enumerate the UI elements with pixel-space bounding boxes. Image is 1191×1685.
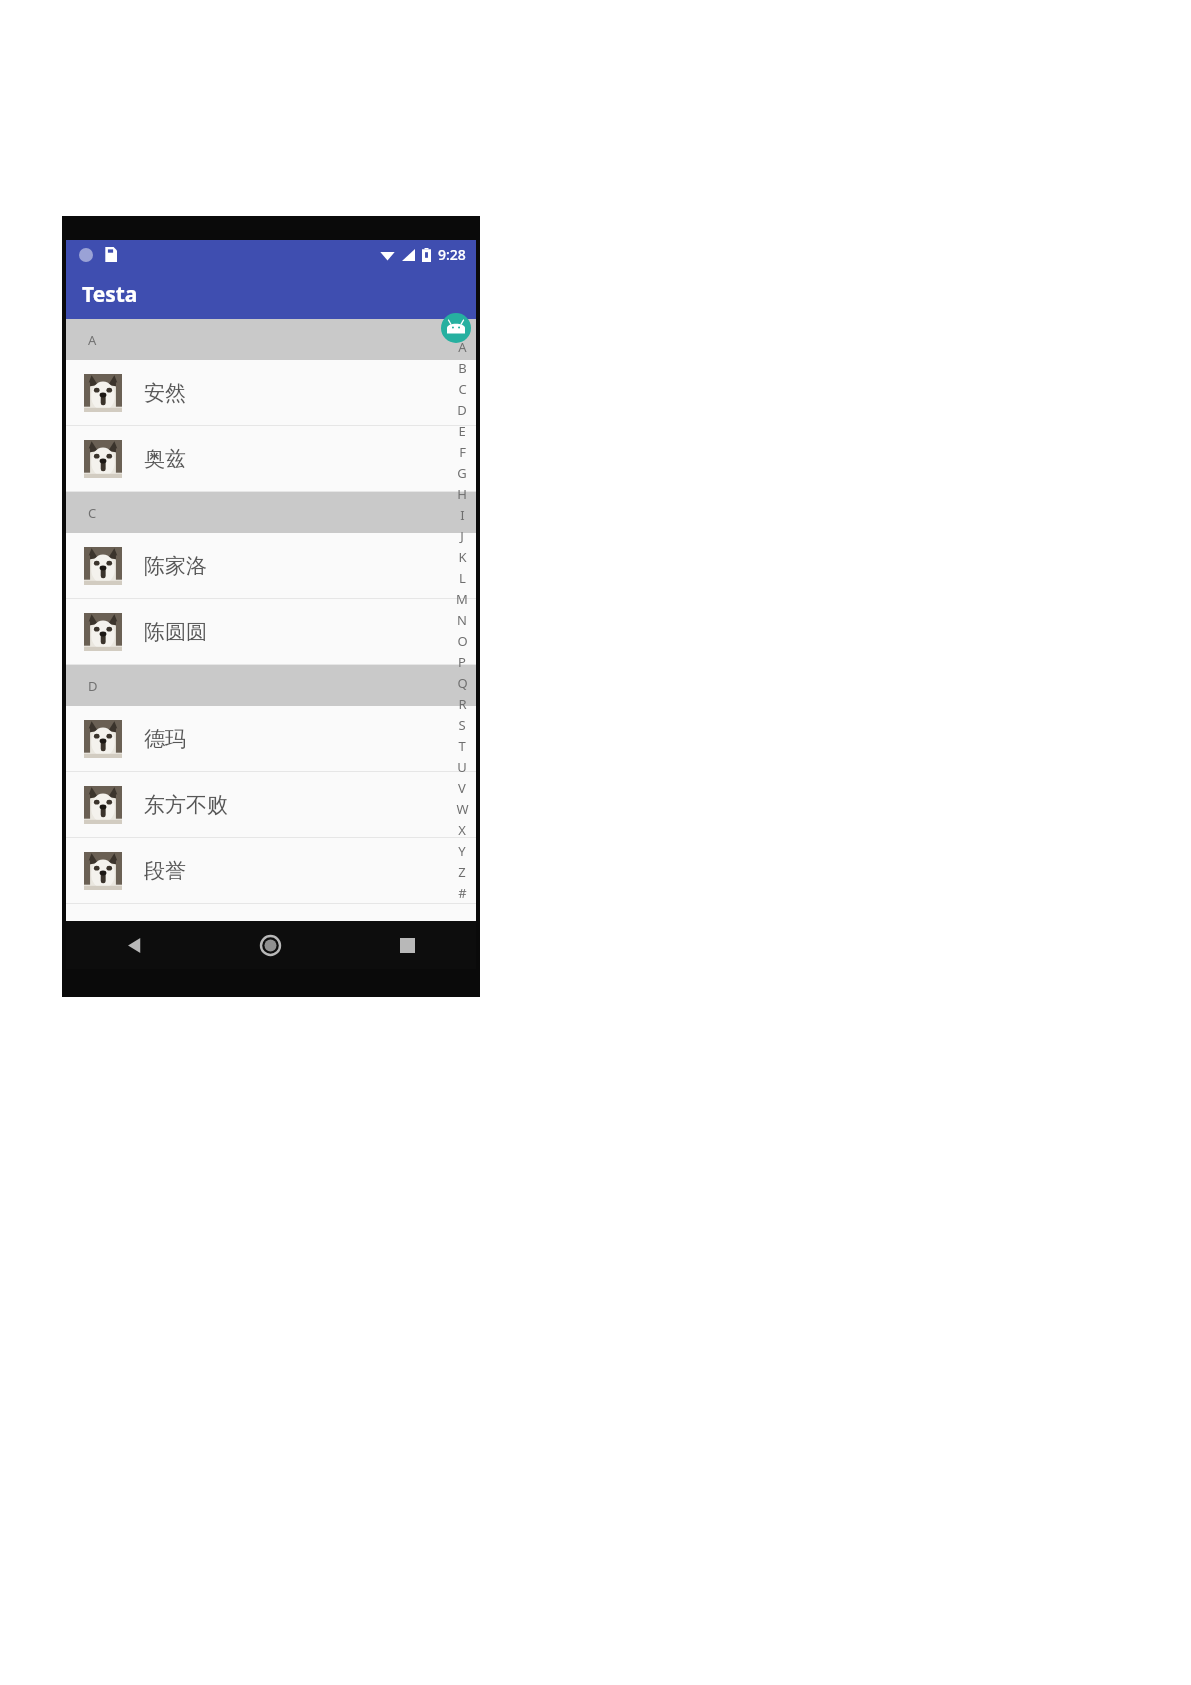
- staticText: R: [458, 695, 467, 713]
- staticText: 9:28: [438, 245, 466, 264]
- staticText: I: [460, 506, 465, 524]
- staticText: N: [457, 611, 467, 629]
- staticText: 段誉: [144, 858, 186, 884]
- staticText: Testa: [82, 280, 138, 309]
- staticText: D: [88, 677, 98, 695]
- staticText: S: [458, 716, 466, 734]
- staticText: M: [456, 590, 468, 608]
- staticText: 陈家洛: [144, 553, 207, 579]
- button[interactable]: 德玛: [66, 706, 476, 771]
- button[interactable]: D: [66, 665, 476, 706]
- button[interactable]: 东方不败: [66, 772, 476, 837]
- staticText: Q: [457, 674, 468, 692]
- staticText: C: [88, 504, 97, 522]
- staticText: W: [456, 800, 469, 818]
- staticText: C: [458, 380, 467, 398]
- button[interactable]: Back: [66, 921, 202, 969]
- staticText: A: [88, 331, 97, 349]
- button[interactable]: 陈圆圆: [66, 599, 476, 664]
- button[interactable]: 陈家洛: [66, 533, 476, 598]
- staticText: 奥兹: [144, 446, 186, 472]
- button[interactable]: Recent apps: [339, 921, 476, 969]
- button[interactable]: 奥兹: [66, 426, 476, 491]
- staticText: Z: [458, 863, 466, 881]
- button[interactable]: A: [66, 319, 476, 360]
- staticText: L: [459, 569, 466, 587]
- button[interactable]: Home: [202, 921, 339, 969]
- staticText: J: [460, 527, 464, 545]
- button[interactable]: 安然: [66, 360, 476, 425]
- staticText: 陈圆圆: [144, 619, 207, 645]
- staticText: 安然: [144, 380, 186, 406]
- staticText: D: [457, 401, 467, 419]
- staticText: E: [458, 422, 466, 440]
- staticText: V: [458, 779, 466, 797]
- staticText: 德玛: [144, 726, 186, 752]
- staticText: F: [459, 443, 466, 461]
- staticText: B: [458, 359, 467, 377]
- staticText: O: [457, 632, 468, 650]
- button[interactable]: C: [66, 492, 476, 533]
- staticText: U: [457, 758, 467, 776]
- button[interactable]: Alphabet scrubber: [448, 336, 476, 903]
- staticText: #: [458, 884, 467, 902]
- staticText: H: [457, 485, 467, 503]
- staticText: 东方不败: [144, 792, 228, 818]
- staticText: K: [458, 548, 467, 566]
- staticText: X: [458, 821, 466, 839]
- staticText: A: [458, 338, 467, 356]
- staticText: Y: [458, 842, 466, 860]
- button[interactable]: 段誉: [66, 838, 476, 903]
- staticText: P: [458, 653, 466, 671]
- staticText: G: [457, 464, 467, 482]
- button[interactable]: Android app icon: [441, 313, 471, 343]
- staticText: T: [458, 737, 466, 755]
